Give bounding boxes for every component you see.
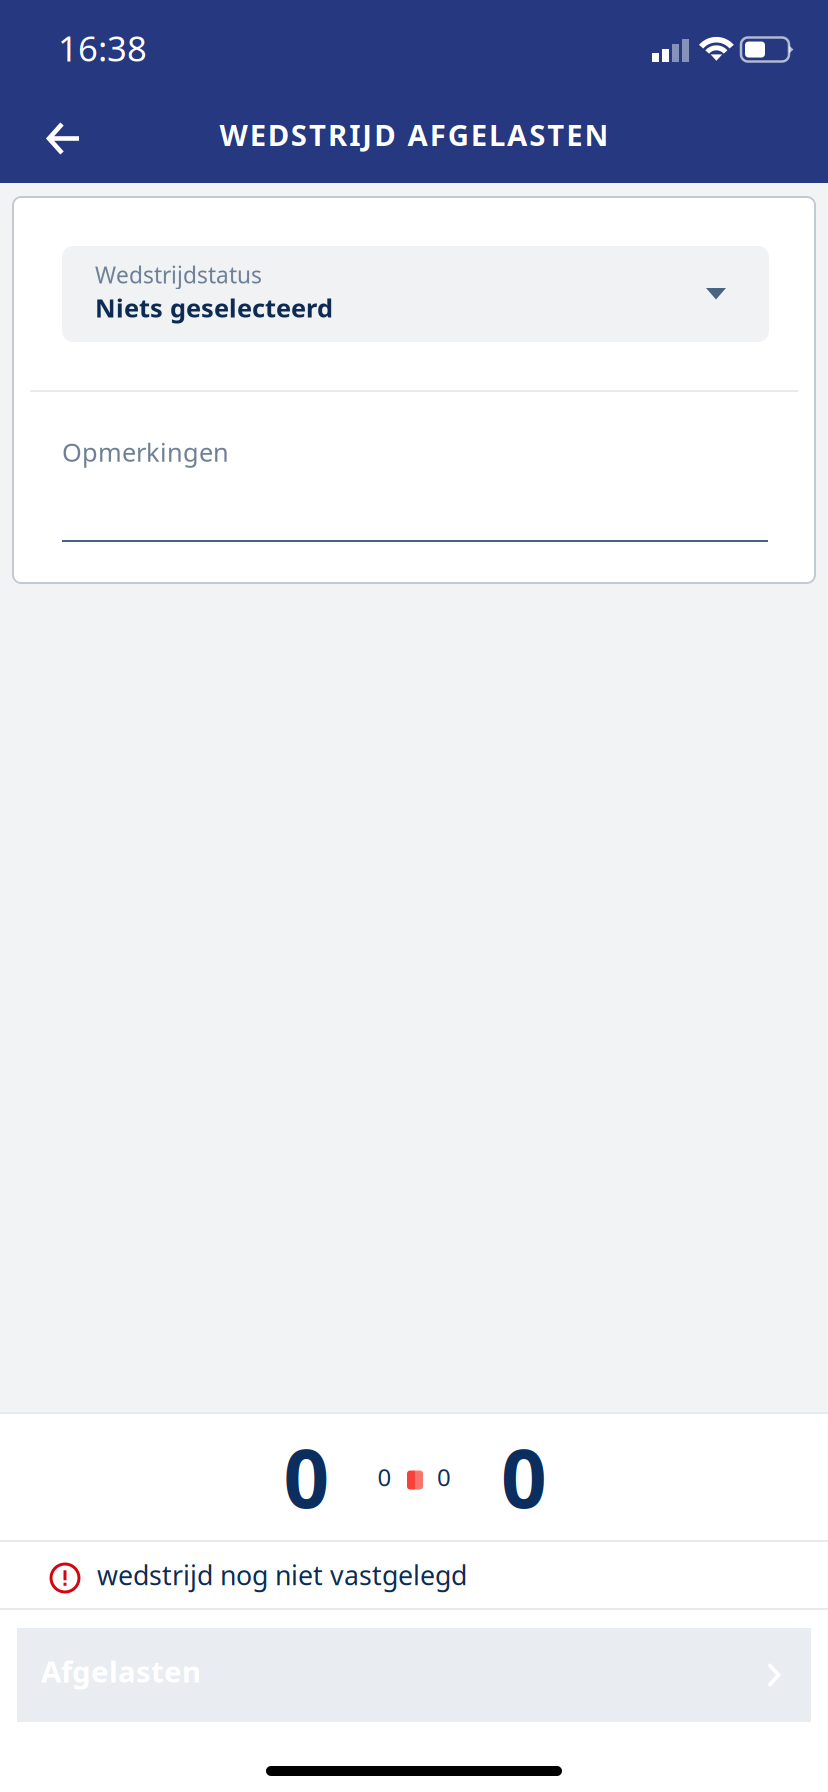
button[interactable]: Wedstrijdstatus xyxy=(62,246,769,342)
staticText: Opmerkingen xyxy=(62,435,229,469)
staticText: 16:38 xyxy=(58,25,147,71)
button[interactable]: Afgelasten xyxy=(17,1628,811,1722)
staticText: Wedstrijdstatus xyxy=(95,260,262,290)
button[interactable]: Opmerkingen xyxy=(62,392,768,542)
staticText: Afgelasten xyxy=(41,1651,201,1690)
staticText: 0 xyxy=(377,1461,391,1493)
staticText: 0 xyxy=(501,1424,547,1530)
button[interactable]: Terug xyxy=(30,103,94,167)
staticText: 0 xyxy=(283,1424,329,1530)
staticText: 0 xyxy=(437,1461,451,1493)
staticText: WEDSTRIJD AFGELASTEN xyxy=(220,115,608,154)
staticText: wedstrijd nog niet vastgelegd xyxy=(97,1557,467,1593)
staticText: Niets geselecteerd xyxy=(95,291,333,324)
